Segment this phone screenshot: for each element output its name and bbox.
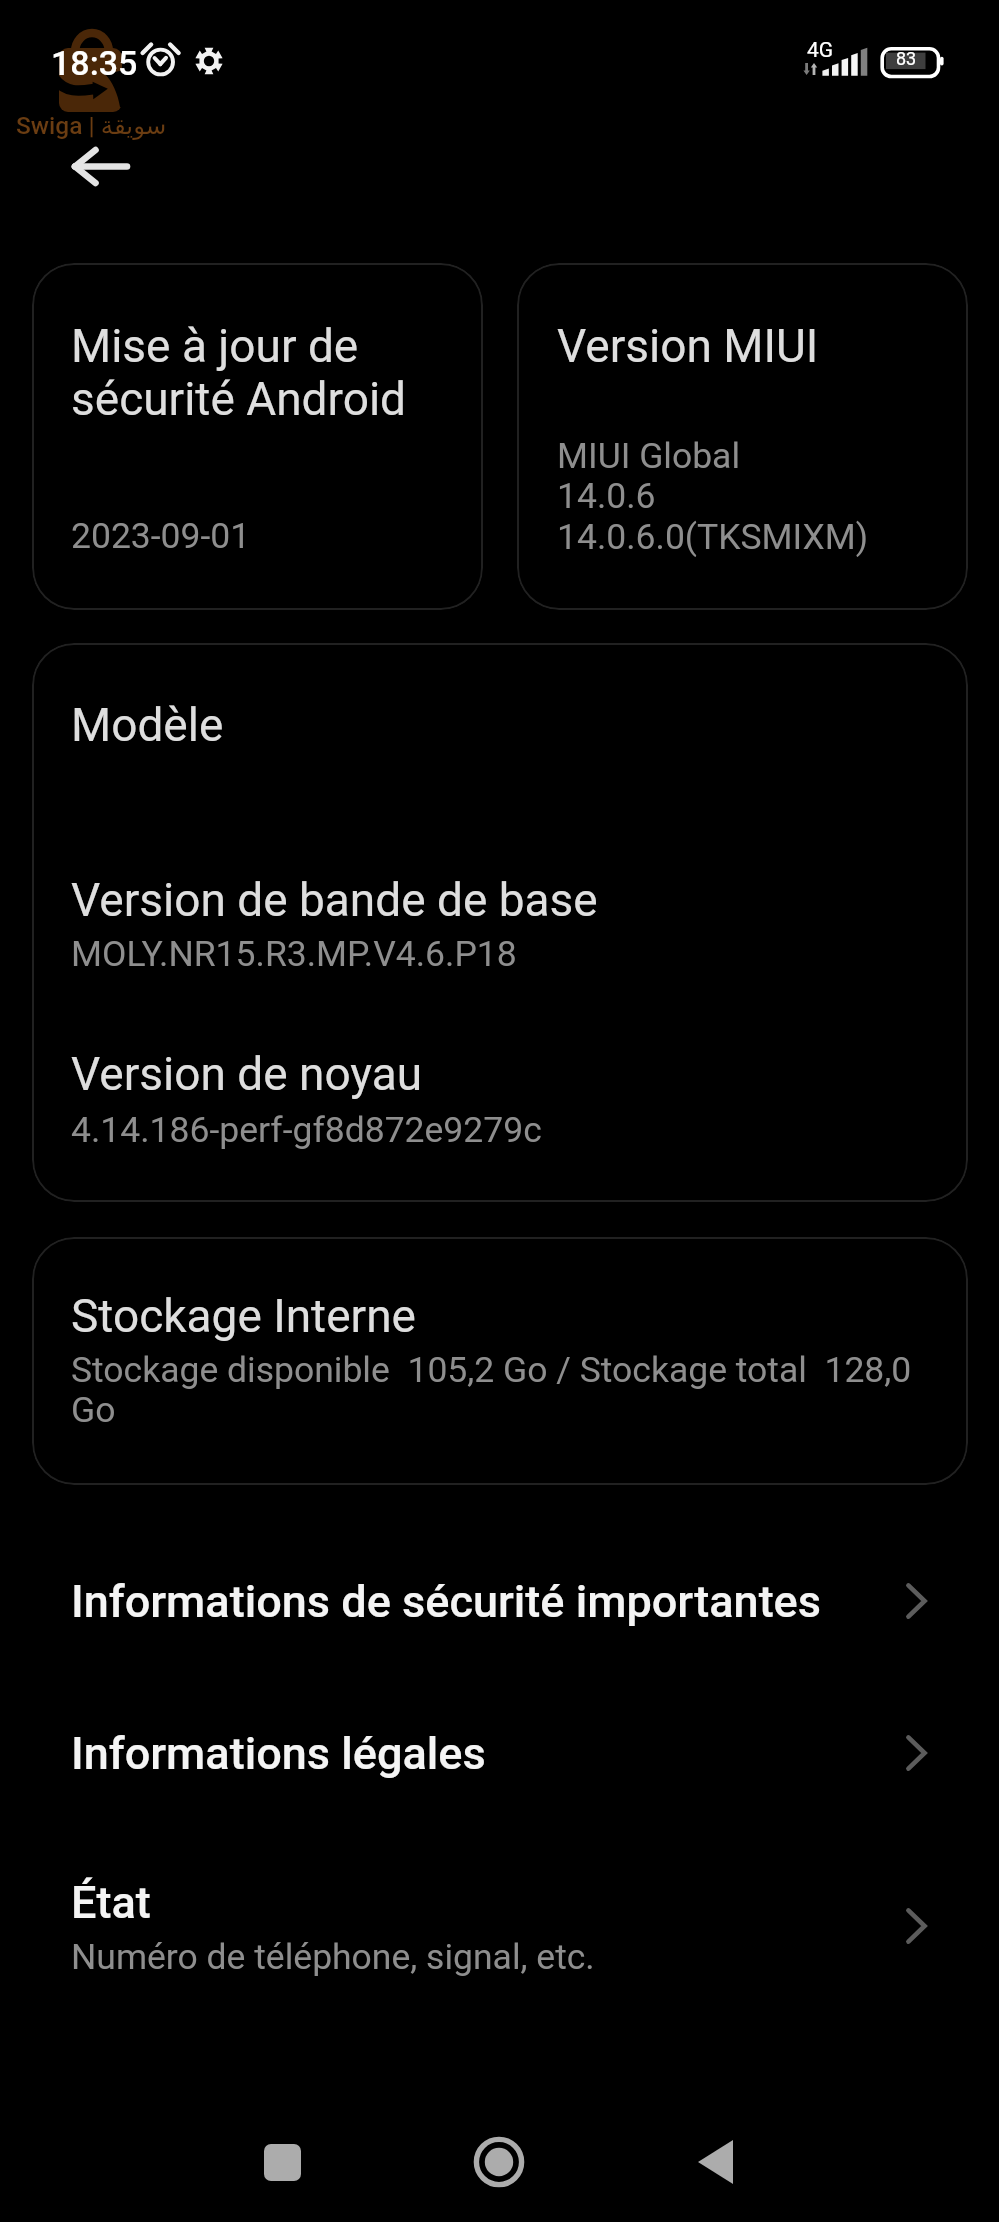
button[interactable]: Back	[46, 130, 146, 204]
staticText: Version de bande de base	[71, 873, 598, 927]
staticText: Informations de sécurité importantes	[71, 1575, 822, 1628]
staticText: 18:35	[51, 43, 138, 83]
staticText: 4G	[807, 38, 834, 63]
button[interactable]: Recent apps	[232, 2112, 332, 2212]
button[interactable]: Informations légales	[0, 1682, 999, 1812]
staticText: Version MIUI	[557, 319, 819, 373]
button[interactable]: Home	[449, 2112, 549, 2212]
staticText: 2023-09-01	[71, 515, 251, 557]
staticText: Stockage disponible 105,2 Go / Stockage …	[71, 1349, 933, 1431]
staticText: Informations légales	[71, 1727, 486, 1780]
staticText: Numéro de téléphone, signal, etc.	[71, 1936, 595, 1978]
button[interactable]: État	[0, 1831, 999, 1991]
staticText: 83	[896, 48, 917, 69]
staticText: État	[71, 1876, 151, 1929]
button[interactable]: Informations de sécurité importantes	[0, 1530, 999, 1660]
staticText: Stockage Interne	[71, 1289, 416, 1343]
staticText: Swiga | سويقة	[16, 111, 167, 140]
staticText: Version de noyau	[71, 1047, 423, 1101]
staticText: 4.14.186-perf-gf8d872e9279c	[71, 1109, 542, 1151]
button[interactable]: Back	[665, 2112, 765, 2212]
staticText: MIUI Global 14.0.6 14.0.6.0(TKSMIXM)	[557, 435, 869, 558]
staticText: Modèle	[71, 698, 224, 752]
staticText: Mise à jour de sécurité Android	[71, 319, 407, 426]
staticText: MOLY.NR15.R3.MP.V4.6.P18	[71, 933, 517, 975]
